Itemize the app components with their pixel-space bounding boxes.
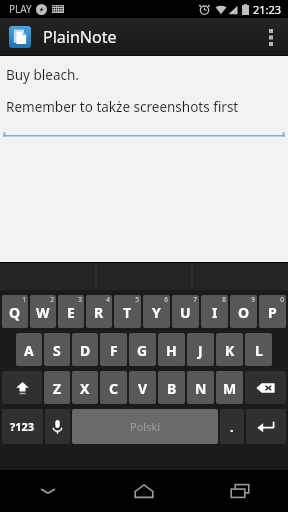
button[interactable]: G (129, 333, 156, 366)
staticText: Z (53, 379, 62, 398)
staticText: 5 (135, 295, 139, 304)
staticText: 0 (280, 295, 284, 304)
staticText: 21:23 (253, 2, 282, 17)
button[interactable]: V (129, 371, 156, 404)
staticText: 6 (164, 295, 168, 304)
button[interactable]: L (245, 333, 272, 366)
staticText: 4 (106, 295, 110, 304)
staticText: K (225, 341, 235, 360)
staticText: G (137, 341, 148, 360)
staticText: C (109, 379, 118, 398)
staticText: L (255, 341, 263, 360)
staticText: P (268, 303, 277, 322)
button[interactable]: Polski (72, 409, 218, 444)
staticText: U (180, 303, 191, 322)
button[interactable]: D (72, 333, 98, 366)
button[interactable]: Voice input (45, 409, 70, 444)
staticText: 3 (78, 295, 82, 304)
staticText: ?123 (10, 419, 35, 434)
button[interactable]: Z (44, 371, 70, 404)
button[interactable]: H (158, 333, 185, 366)
button[interactable]: Q (2, 295, 28, 328)
button[interactable]: X (72, 371, 98, 404)
button[interactable]: F (100, 333, 127, 366)
staticText: H (166, 341, 177, 360)
button[interactable]: ?123 (2, 409, 43, 444)
button[interactable]: Enter (246, 409, 286, 444)
staticText: R (94, 303, 104, 322)
button[interactable]: Buy bleach. (0, 56, 288, 262)
button[interactable]: More options (254, 18, 288, 56)
staticText: Polski (130, 419, 161, 434)
button[interactable]: O (230, 295, 257, 328)
staticText: 7 (193, 295, 197, 304)
staticText: Y (152, 303, 161, 322)
staticText: J (198, 341, 203, 360)
button[interactable]: Y (143, 295, 170, 328)
button[interactable]: M (216, 371, 243, 404)
staticText: V (138, 379, 148, 398)
button[interactable]: Recent apps (192, 470, 288, 512)
staticText: X (80, 379, 90, 398)
button[interactable]: N (187, 371, 214, 404)
button[interactable]: I (201, 295, 228, 328)
staticText: 9 (251, 295, 255, 304)
staticText: F (110, 341, 118, 360)
staticText: W (36, 303, 50, 322)
button[interactable]: T (114, 295, 141, 328)
staticText: Buy bleach. (6, 66, 79, 84)
staticText: S (53, 341, 61, 360)
button[interactable]: . (220, 409, 244, 444)
staticText: 1 (22, 295, 26, 304)
staticText: B (167, 379, 177, 398)
staticText: T (123, 303, 132, 322)
staticText: PLAY (9, 2, 32, 16)
button[interactable]: R (86, 295, 112, 328)
button[interactable]: P (259, 295, 286, 328)
staticText: O (238, 303, 250, 322)
staticText: D (80, 341, 91, 360)
button[interactable]: E (58, 295, 84, 328)
button[interactable]: S (44, 333, 70, 366)
button[interactable]: W (30, 295, 56, 328)
staticText: PlainNote (43, 26, 117, 48)
button[interactable]: Backspace (245, 371, 286, 404)
button[interactable]: Home (96, 470, 192, 512)
staticText: 8 (222, 295, 226, 304)
staticText: A (24, 341, 34, 360)
staticText: 2 (50, 295, 54, 304)
staticText: I (212, 303, 218, 322)
button[interactable]: C (100, 371, 127, 404)
staticText: E (67, 303, 75, 322)
button[interactable]: J (187, 333, 214, 366)
button[interactable]: U (172, 295, 199, 328)
staticText: . (230, 418, 234, 436)
staticText: Remember to także screenshots first (6, 98, 239, 116)
staticText: Q (9, 303, 21, 322)
button[interactable]: Hide keyboard (0, 470, 96, 512)
staticText: N (195, 379, 207, 398)
button[interactable]: K (216, 333, 243, 366)
button[interactable]: Shift (2, 371, 42, 404)
button[interactable]: A (16, 333, 42, 366)
staticText: M (223, 379, 237, 398)
button[interactable]: B (158, 371, 185, 404)
